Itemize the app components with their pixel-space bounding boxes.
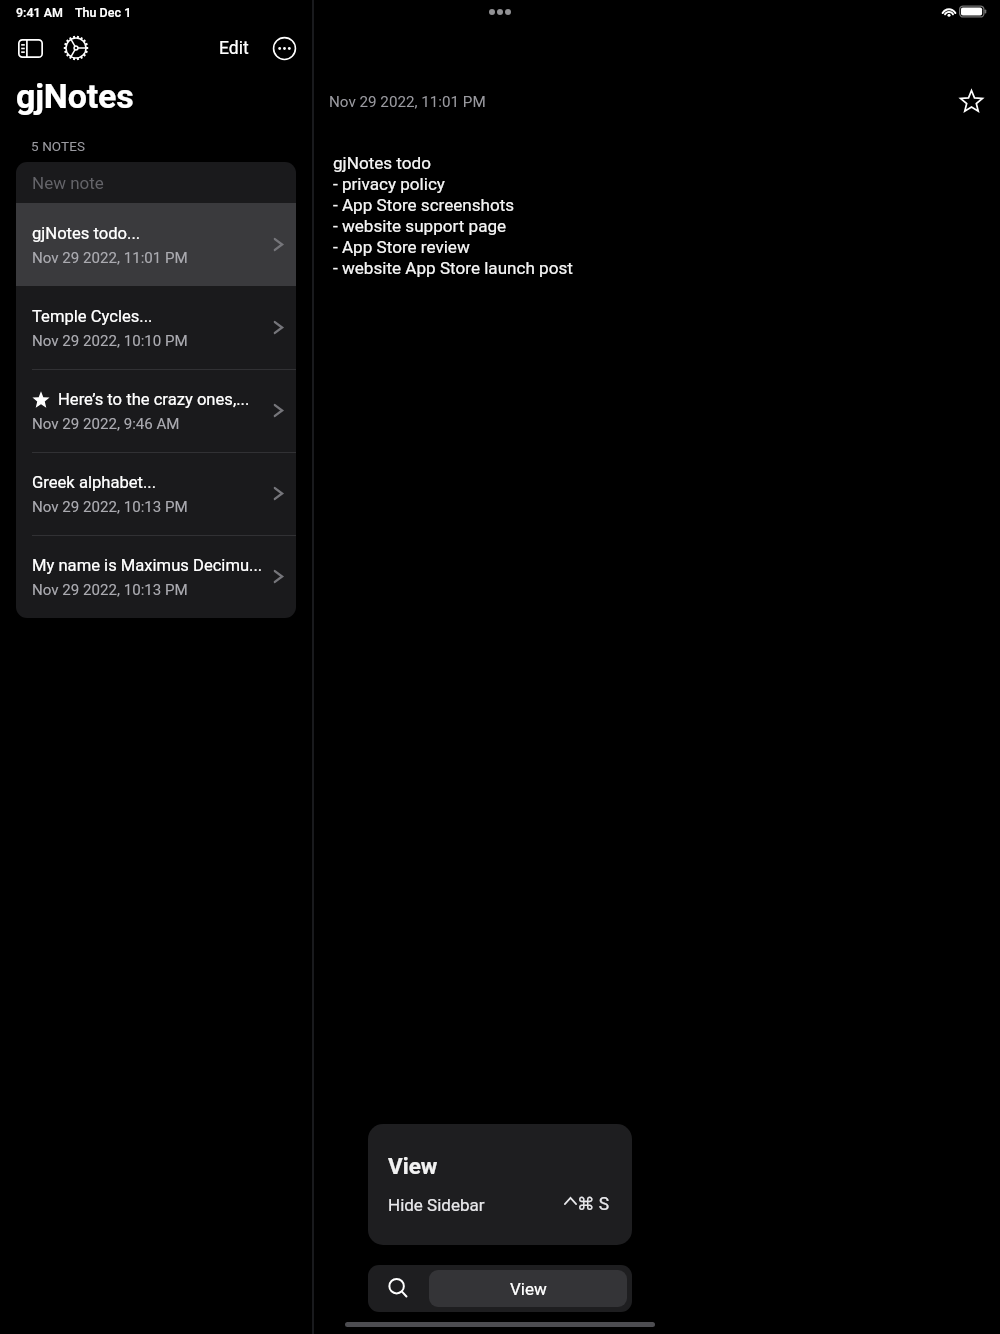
staticText: - App Store review [333,237,470,257]
staticText: - App Store screenshots [333,195,515,215]
staticText: Nov 29 2022, 11:01 PM [32,249,188,267]
staticText: Nov 29 2022, 9:46 AM [32,415,180,433]
staticText: Nov 29 2022, 11:01 PM [329,93,486,111]
button[interactable]: gjNotes todo... [16,203,296,286]
staticText: 5 NOTES [31,138,86,154]
button[interactable]: More options [264,28,304,68]
button[interactable]: View [429,1270,627,1307]
staticText: My name is Maximus Decimu... [32,556,263,575]
staticText: Edit [219,38,249,59]
button[interactable]: Here’s to the crazy ones,... [16,369,296,452]
staticText: - privacy policy [333,174,445,194]
staticText: Here’s to the crazy ones,... [58,390,250,409]
staticText: Temple Cycles... [32,307,153,326]
button[interactable]: Edit [213,28,255,68]
staticText: Thu Dec 1 [75,5,132,20]
staticText: 9:41 AM [16,5,64,20]
button[interactable]: My name is Maximus Decimu... [16,535,296,618]
staticText: View [388,1153,438,1179]
staticText: gjNotes todo... [32,224,141,243]
button[interactable]: Greek alphabet... [16,452,296,535]
button[interactable]: Favorite [954,84,988,118]
button[interactable]: Settings [56,28,96,68]
staticText: Nov 29 2022, 10:13 PM [32,498,188,516]
button[interactable]: Temple Cycles... [16,286,296,369]
staticText: Nov 29 2022, 10:10 PM [32,332,188,350]
button[interactable]: Toggle sidebar [10,28,50,68]
staticText: Hide Sidebar [388,1195,485,1215]
staticText: View [510,1279,547,1299]
staticText: - website App Store launch post [333,258,573,278]
staticText: - website support page [333,216,507,236]
button[interactable]: Search [368,1265,429,1312]
staticText: Greek alphabet... [32,473,157,492]
staticText: gjNotes [16,76,134,116]
staticText: New note [32,173,104,193]
button[interactable]: New note [16,162,296,203]
staticText: ⌘ S [577,1194,610,1215]
staticText: Nov 29 2022, 10:13 PM [32,581,188,599]
staticText: gjNotes todo [333,153,431,173]
